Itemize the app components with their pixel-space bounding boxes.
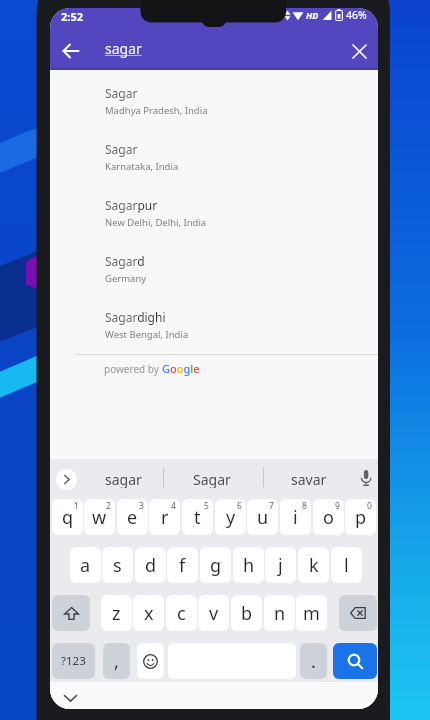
button[interactable]: Sagar <box>182 470 242 488</box>
button[interactable] <box>137 643 164 679</box>
staticText: a <box>80 553 91 578</box>
staticText: 2:52 <box>61 9 83 24</box>
button[interactable]: e <box>117 499 148 535</box>
staticText: HD <box>306 9 319 21</box>
staticText: n <box>274 601 286 626</box>
staticText: x <box>144 601 154 626</box>
button[interactable]: d <box>135 547 166 583</box>
staticText: Sagar <box>105 85 138 101</box>
staticText: Germany <box>105 272 147 285</box>
staticText: savar <box>291 470 327 488</box>
button[interactable] <box>56 469 77 490</box>
button[interactable] <box>52 595 90 631</box>
button[interactable]: c <box>166 595 197 631</box>
staticText: v <box>209 601 219 626</box>
staticText: p <box>355 505 367 530</box>
button[interactable]: Sagard <box>50 251 378 307</box>
staticText: Madhya Pradesh, India <box>105 104 208 117</box>
button[interactable] <box>339 595 377 631</box>
button[interactable]: savar <box>279 470 339 488</box>
button[interactable]: Sagar <box>50 83 378 139</box>
staticText: m <box>303 601 320 626</box>
staticText: g <box>210 553 222 578</box>
staticText: Sagard <box>105 253 145 269</box>
button[interactable]: Sagardighi <box>50 307 378 363</box>
button[interactable]: s <box>102 547 133 583</box>
button[interactable] <box>354 464 378 493</box>
staticText: sagar <box>105 470 142 488</box>
staticText: West Bengal, India <box>105 328 189 341</box>
button[interactable]: , <box>103 643 130 679</box>
button[interactable]: n <box>264 595 295 631</box>
button[interactable]: r <box>149 499 180 535</box>
button[interactable]: y <box>215 499 246 535</box>
staticText: i <box>293 505 298 530</box>
staticText: d <box>145 553 157 578</box>
staticText: 7 <box>269 500 274 512</box>
staticText: 1 <box>74 500 79 512</box>
staticText: sagar <box>105 39 142 58</box>
button[interactable]: l <box>331 547 362 583</box>
button[interactable] <box>333 643 377 679</box>
button[interactable]: x <box>133 595 164 631</box>
staticText: 46% <box>346 8 367 22</box>
staticText: 0 <box>367 500 372 512</box>
staticText: 2 <box>106 500 111 512</box>
staticText: q <box>62 505 74 530</box>
button[interactable]: t <box>182 499 213 535</box>
staticText: Sagardighi <box>105 309 166 325</box>
staticText: j <box>278 553 283 578</box>
staticText: . <box>311 649 316 674</box>
button[interactable]: a <box>70 547 101 583</box>
staticText: Sagar <box>105 141 138 157</box>
staticText: 3 <box>139 500 144 512</box>
button[interactable]: v <box>198 595 229 631</box>
staticText: powered by <box>104 362 162 376</box>
button[interactable]: o <box>313 499 344 535</box>
staticText: h <box>243 553 255 578</box>
staticText: 6 <box>237 500 242 512</box>
staticText: Sagarpur <box>105 197 158 213</box>
staticText: e <box>127 505 138 530</box>
staticText: r <box>161 505 169 530</box>
button[interactable]: p <box>345 499 376 535</box>
button[interactable]: u <box>247 499 278 535</box>
button[interactable]: q <box>52 499 83 535</box>
button[interactable]: h <box>233 547 264 583</box>
button[interactable]: b <box>231 595 262 631</box>
button[interactable]: i <box>280 499 311 535</box>
staticText: 4 <box>171 500 176 512</box>
button[interactable]: g <box>200 547 231 583</box>
staticText: b <box>241 601 253 626</box>
button[interactable]: w <box>84 499 115 535</box>
staticText: Google <box>162 361 200 376</box>
staticText: z <box>112 601 121 626</box>
staticText: y <box>226 505 236 530</box>
staticText: o <box>323 505 334 530</box>
button[interactable]: z <box>101 595 132 631</box>
staticText: , <box>114 649 119 674</box>
button[interactable]: Sagar <box>50 139 378 195</box>
staticText: New Delhi, Delhi, India <box>105 216 207 229</box>
staticText: f <box>179 553 186 578</box>
staticText: ?123 <box>61 653 86 669</box>
staticText: Karnataka, India <box>105 160 179 173</box>
staticText: s <box>113 553 122 578</box>
staticText: c <box>177 601 186 626</box>
staticText: w <box>92 505 107 530</box>
button[interactable]: m <box>296 595 327 631</box>
button[interactable]: Sagarpur <box>50 195 378 251</box>
staticText: t <box>194 505 201 530</box>
button[interactable] <box>54 34 88 68</box>
button[interactable]: j <box>265 547 296 583</box>
button[interactable]: k <box>298 547 329 583</box>
button[interactable]: sagar <box>93 470 153 488</box>
button[interactable] <box>345 37 373 65</box>
button[interactable]: ?123 <box>52 643 95 679</box>
staticText: u <box>257 505 269 530</box>
button[interactable]: f <box>167 547 198 583</box>
staticText: k <box>309 553 319 578</box>
button[interactable]: . <box>300 643 327 679</box>
staticText: 5 <box>204 500 209 512</box>
